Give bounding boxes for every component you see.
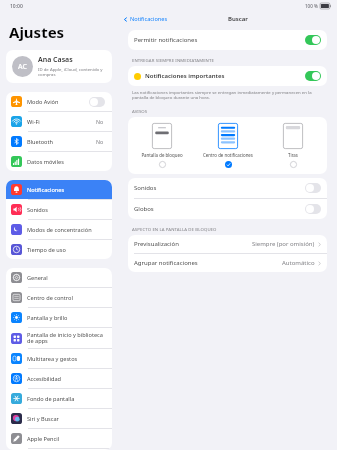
button[interactable]: Centro de notificaciones [197, 123, 259, 168]
button[interactable]: Agrupar notificaciones [128, 254, 327, 272]
staticText: Sonidos [134, 184, 305, 192]
staticText: AC [18, 62, 27, 72]
staticText: Siempre (por omisión) [252, 240, 315, 248]
button[interactable]: Bluetooth [6, 132, 112, 151]
button[interactable]: Previsualización [128, 235, 327, 253]
staticText: Automático [282, 259, 315, 267]
button[interactable]: Pantalla de inicio y biblioteca de apps [6, 328, 112, 348]
button[interactable]: Sonidos [128, 178, 327, 198]
staticText: ASPECTO EN LA PANTALLA DE BLOQUEO [132, 226, 217, 232]
staticText: Tiempo de uso [27, 246, 107, 254]
staticText: Pantalla de inicio y biblioteca de apps [27, 331, 107, 345]
staticText: Permitir notificaciones [134, 36, 305, 44]
staticText: Ana Casas [38, 55, 73, 65]
staticText: Globos [134, 205, 305, 213]
staticText: AVISOS [132, 108, 148, 114]
button[interactable]: Notificaciones [123, 15, 168, 23]
button[interactable]: General [6, 268, 112, 287]
button[interactable]: Desactivado [305, 204, 321, 214]
button[interactable]: Datos móviles [6, 152, 112, 171]
staticText: Previsualización [134, 240, 252, 248]
staticText: Buscar [228, 15, 248, 23]
staticText: Agrupar notificaciones [134, 259, 282, 267]
staticText: No [96, 118, 104, 125]
staticText: Modos de concentración [27, 226, 107, 234]
button[interactable]: Activado [305, 35, 321, 45]
staticText: Centro de control [27, 294, 107, 302]
button[interactable]: Modos de concentración [6, 220, 112, 239]
staticText: Notificaciones [130, 15, 168, 23]
staticText: Sonidos [27, 206, 107, 214]
staticText: Notificaciones importantes [145, 72, 305, 80]
button[interactable]: Apple Pencil [6, 429, 112, 448]
button[interactable]: Desactivado [89, 97, 105, 107]
staticText: Notificaciones [27, 186, 107, 194]
staticText: No [96, 138, 104, 145]
staticText: Tiras [288, 152, 298, 158]
button[interactable]: Pantalla de bloqueo [131, 123, 193, 168]
staticText: Fondo de pantalla [27, 395, 107, 403]
button[interactable]: Sonidos [6, 200, 112, 219]
button[interactable]: Modo Avión [6, 92, 112, 111]
staticText: Pantalla y brillo [27, 314, 107, 322]
staticText: Ajustes [9, 22, 65, 42]
staticText: Modo Avión [27, 98, 89, 106]
button[interactable]: AC [6, 50, 112, 83]
button[interactable]: Accesibilidad [6, 369, 112, 388]
staticText: Multitarea y gestos [27, 355, 107, 363]
button[interactable]: Tiempo de uso [6, 240, 112, 259]
button[interactable]: Centro de control [6, 288, 112, 307]
button[interactable]: Multitarea y gestos [6, 349, 112, 368]
button[interactable]: Tiras [262, 123, 324, 168]
staticText: Bluetooth [27, 138, 96, 146]
button[interactable]: Notificaciones [6, 180, 112, 199]
button[interactable]: Notificaciones importantes [128, 66, 327, 86]
staticText: Pantalla de bloqueo [141, 152, 183, 158]
staticText: General [27, 274, 107, 282]
button[interactable]: Pantalla y brillo [6, 308, 112, 327]
staticText: Wi-Fi [27, 118, 96, 126]
button[interactable]: Wi-Fi [6, 112, 112, 131]
staticText: Accesibilidad [27, 375, 107, 383]
staticText: Datos móviles [27, 158, 107, 166]
staticText: ENTREGAR SIEMPRE INMEDIATAMENTE [132, 57, 214, 63]
button[interactable]: Face ID y código [6, 449, 112, 450]
staticText: Siri y Buscar [27, 415, 107, 423]
button[interactable]: Permitir notificaciones [128, 30, 327, 50]
button[interactable]: Activado [305, 71, 321, 81]
button[interactable]: Globos [128, 199, 327, 219]
button[interactable]: Fondo de pantalla [6, 389, 112, 408]
staticText: ID de Apple, iCloud, contenido y compras [38, 66, 106, 78]
button[interactable]: Desactivado [305, 183, 321, 193]
staticText: Las notificaciones importantes siempre s… [132, 89, 321, 101]
staticText: Apple Pencil [27, 435, 107, 443]
staticText: 100 % [305, 3, 318, 9]
staticText: Centro de notificaciones [203, 152, 253, 158]
staticText: 10:00 [10, 3, 23, 10]
button[interactable]: Siri y Buscar [6, 409, 112, 428]
